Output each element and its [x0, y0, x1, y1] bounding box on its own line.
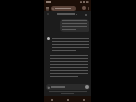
button[interactable]: Voice input — [85, 85, 89, 89]
button[interactable]: Voice input — [46, 84, 90, 90]
button[interactable] — [57, 13, 77, 15]
button[interactable]: Recents — [80, 96, 87, 102]
button[interactable]: Back — [48, 96, 55, 102]
button[interactable]: Home — [64, 96, 71, 102]
button[interactable]: Open navigation menu — [45, 6, 50, 11]
button[interactable] — [51, 6, 76, 11]
button[interactable]: More options — [87, 7, 90, 10]
button[interactable] — [60, 19, 89, 32]
button[interactable]: Account — [82, 6, 86, 10]
